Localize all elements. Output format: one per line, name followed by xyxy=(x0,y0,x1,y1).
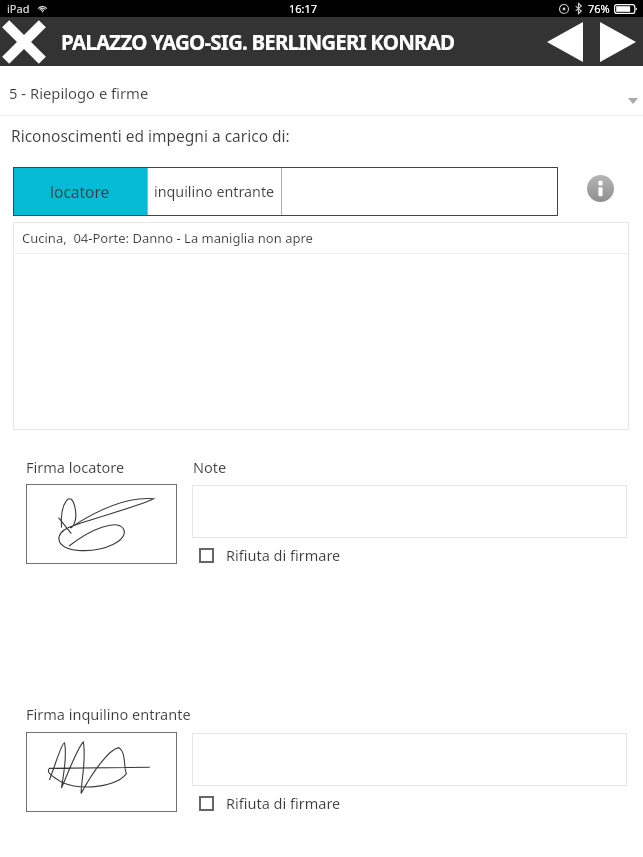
staticText: locatore xyxy=(50,181,110,202)
button[interactable]: Cucina, 04-Porte: Danno - La maniglia no… xyxy=(13,222,629,253)
button[interactable]: 5 - Riepilogo e firme xyxy=(0,66,643,116)
button[interactable]: Next xyxy=(591,17,643,66)
button[interactable]: Previous xyxy=(538,17,591,66)
staticText: Rifiuta di firmare xyxy=(226,545,341,565)
button[interactable]: Rifiuta di firmare xyxy=(199,545,341,565)
button[interactable]: Note field xyxy=(192,485,627,538)
staticText: Firma locatore xyxy=(26,457,125,477)
button[interactable]: Info xyxy=(587,175,614,202)
staticText: iPad xyxy=(7,1,30,16)
staticText: Firma inquilino entrante xyxy=(26,704,191,724)
button[interactable]: Note field xyxy=(192,733,627,786)
button[interactable]: Signature pad xyxy=(26,484,177,564)
button[interactable]: inquilino entrante xyxy=(148,167,281,216)
button[interactable]: Close xyxy=(0,17,48,66)
staticText: Note xyxy=(193,457,227,477)
staticText: Cucina, 04-Porte: Danno - La maniglia no… xyxy=(22,229,313,247)
staticText: 16:17 xyxy=(289,1,318,16)
button[interactable]: Signature pad xyxy=(26,732,177,812)
staticText: 5 - Riepilogo e firme xyxy=(9,83,149,103)
staticText: Rifiuta di firmare xyxy=(226,793,341,813)
staticText: PALAZZO YAGO-SIG. BERLINGERI KONRAD xyxy=(61,28,455,56)
button[interactable]: locatore xyxy=(13,167,147,216)
button[interactable]: Rifiuta di firmare xyxy=(199,793,341,813)
staticText: 76% xyxy=(588,1,610,16)
staticText: inquilino entrante xyxy=(154,182,275,201)
staticText: Riconoscimenti ed impegni a carico di: xyxy=(11,125,290,146)
